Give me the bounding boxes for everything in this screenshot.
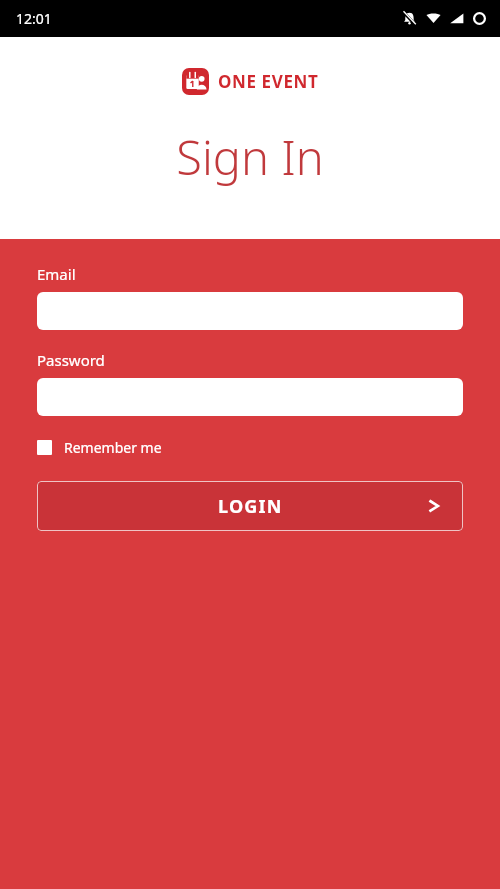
staticText: 12:01 <box>16 9 52 28</box>
button[interactable] <box>37 292 463 330</box>
staticText: Remember me <box>64 438 162 457</box>
button[interactable]: LOGIN <box>37 481 463 531</box>
staticText: Sign In <box>176 125 324 189</box>
staticText: Password <box>37 350 105 370</box>
other: Login <box>427 499 441 513</box>
button[interactable]: Remember me <box>37 438 162 457</box>
staticText: Email <box>37 264 76 284</box>
button[interactable] <box>37 378 463 416</box>
staticText: LOGIN <box>218 494 283 519</box>
staticText: ONE EVENT <box>218 70 319 93</box>
